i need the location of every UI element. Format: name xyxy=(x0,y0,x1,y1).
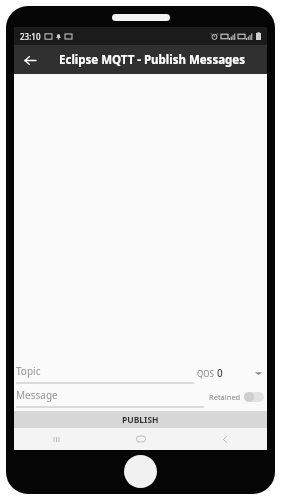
staticText: PUBLISH xyxy=(122,414,159,426)
button[interactable]: Home xyxy=(99,428,183,450)
staticText: Eclipse MQTT - Publish Messages xyxy=(59,52,245,68)
staticText: Topic xyxy=(16,364,41,378)
staticText: Message xyxy=(16,388,58,402)
button[interactable]: Navigate up xyxy=(17,47,43,73)
button[interactable]: Topic xyxy=(16,362,194,384)
other: Home button xyxy=(124,455,157,488)
button[interactable]: PUBLISH xyxy=(14,411,267,428)
staticText: Retained xyxy=(209,392,241,402)
staticText: QOS xyxy=(197,368,214,379)
button[interactable]: Retained xyxy=(204,386,267,408)
staticText: 23:10 xyxy=(20,31,41,42)
button[interactable]: Back xyxy=(183,428,267,450)
staticText: 0 xyxy=(217,366,223,380)
button[interactable]: Message xyxy=(16,386,204,408)
button[interactable]: QOS xyxy=(197,362,267,384)
button[interactable]: Recent apps xyxy=(14,428,99,450)
